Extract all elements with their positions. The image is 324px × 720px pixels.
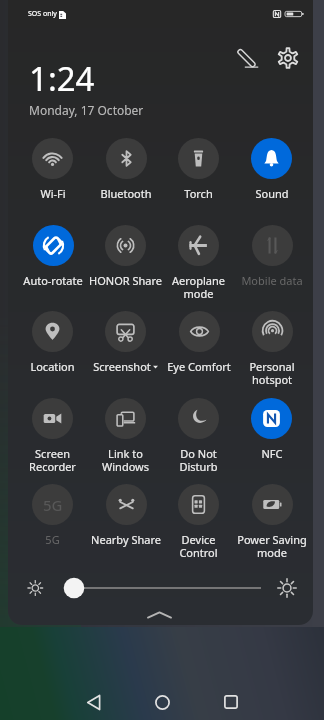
button[interactable]: Power Saving mode — [235, 484, 308, 560]
staticText: Nearby Share — [91, 532, 161, 547]
other: Collapse — [148, 611, 171, 619]
button[interactable]: Settings — [269, 39, 307, 77]
button[interactable]: Nearby Share — [89, 484, 162, 547]
staticText: Wi-Fi — [40, 186, 66, 201]
staticText: 1:24 — [29, 56, 95, 101]
staticText: SOS only — [28, 9, 57, 19]
button[interactable]: Bluetooth — [89, 138, 162, 201]
staticText: Device Control — [179, 532, 218, 560]
staticText: 5G — [43, 495, 63, 515]
button[interactable]: Wi-Fi — [16, 138, 89, 201]
staticText: Location — [30, 359, 75, 374]
button[interactable]: Auto-rotate — [16, 225, 89, 288]
button[interactable]: Screen Recorder — [16, 398, 89, 474]
button[interactable]: Do Not Disturb — [162, 398, 235, 474]
staticText: HONOR Share — [89, 273, 162, 288]
button[interactable]: 5G — [16, 484, 89, 547]
button[interactable]: Mobile data — [235, 225, 308, 288]
staticText: Power Saving mode — [237, 532, 307, 560]
button[interactable]: Aeroplane mode — [162, 225, 235, 301]
staticText: Eye Comfort — [167, 359, 231, 374]
button[interactable]: Eye Comfort — [162, 311, 235, 374]
staticText: Torch — [184, 186, 213, 201]
button[interactable]: Home — [140, 680, 184, 720]
button[interactable]: Device Control — [162, 484, 235, 560]
button[interactable]: Link to Windows — [89, 398, 162, 474]
staticText: Screen Recorder — [29, 446, 76, 474]
staticText: Monday, 17 October — [29, 102, 144, 118]
staticText: NFC — [261, 446, 283, 461]
staticText: Link to Windows — [102, 446, 149, 474]
staticText: 5G — [45, 532, 60, 547]
button[interactable]: Sound — [235, 138, 308, 201]
button[interactable]: NFC — [235, 398, 308, 461]
staticText: Screenshot — [93, 359, 151, 374]
button[interactable]: Personal hotspot — [235, 311, 308, 387]
button[interactable]: Torch — [162, 138, 235, 201]
staticText: Sound — [255, 186, 289, 201]
staticText: Bluetooth — [100, 186, 152, 201]
staticText: Mobile data — [241, 273, 303, 288]
button[interactable]: Location — [16, 311, 89, 374]
button[interactable]: HONOR Share — [89, 225, 162, 288]
staticText: Do Not Disturb — [179, 446, 218, 474]
button[interactable]: Back — [71, 680, 115, 720]
button[interactable]: Edit — [229, 39, 267, 77]
staticText: Personal hotspot — [249, 359, 295, 387]
staticText: Aeroplane mode — [172, 273, 225, 301]
staticText: Auto-rotate — [23, 273, 83, 288]
button[interactable]: Recents — [209, 680, 253, 720]
button[interactable]: Screenshot — [89, 311, 162, 374]
